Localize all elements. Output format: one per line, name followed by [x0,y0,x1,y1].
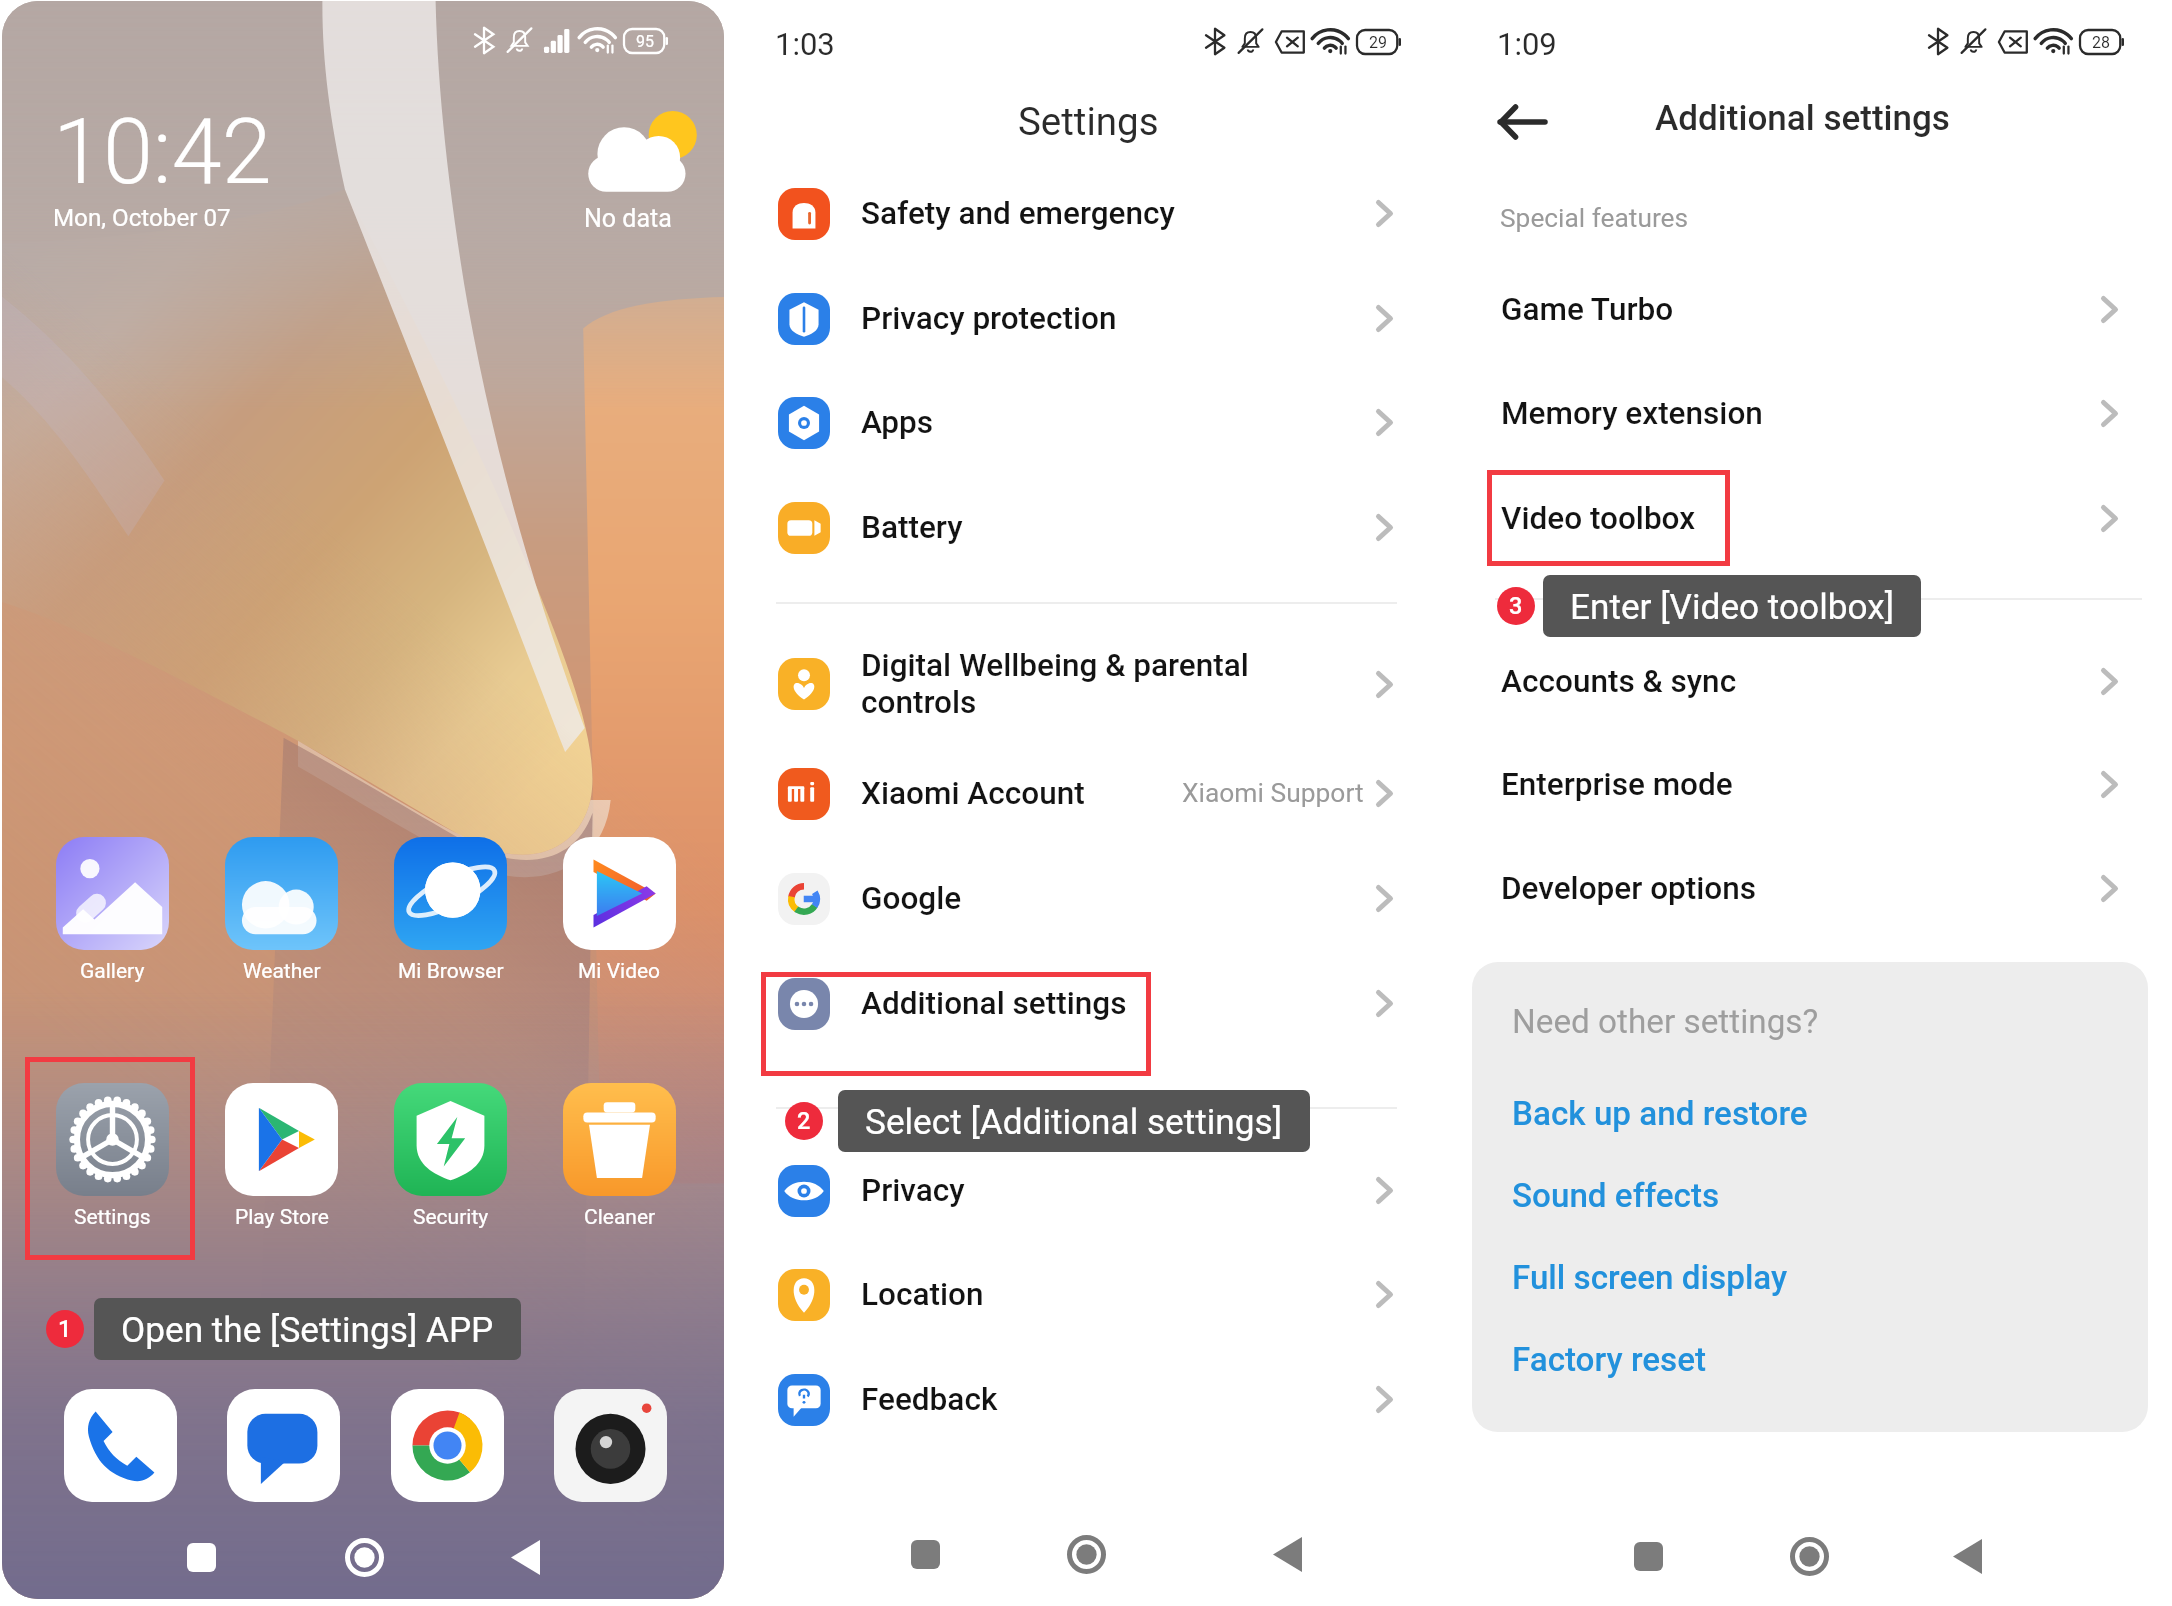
button[interactable]: Xiaomi Account [748,741,1450,846]
staticText: Enterprise mode [1501,766,1733,803]
staticText: Digital Wellbeing & parental [861,647,1249,684]
button[interactable]: Accounts & sync [1450,629,2172,733]
button[interactable]: Cleaner [549,1073,690,1249]
staticText: Game Turbo [1501,291,1674,328]
staticText: Factory reset [1512,1340,1707,1379]
button[interactable]: Feedback [748,1347,1450,1452]
staticText: Mon, October 07 [53,204,231,232]
button[interactable]: Factory reset [1490,1333,1930,1385]
button[interactable]: Privacy protection [748,266,1450,371]
staticText: Settings [74,1205,151,1230]
button[interactable]: Back [1935,1524,1999,1588]
staticText: Feedback [861,1381,998,1418]
staticText: Memory extension [1501,395,1763,432]
button[interactable]: Additional settings [748,951,1450,1056]
staticText: Accounts & sync [1501,663,1737,700]
staticText: Back up and restore [1512,1094,1808,1133]
staticText: Xiaomi Account [861,775,1085,812]
button[interactable]: Mi Browser [380,827,521,1003]
button[interactable]: Back [493,1525,557,1589]
staticText: Select [Additional settings] [865,1101,1283,1142]
button[interactable]: Location [748,1242,1450,1347]
staticText: Enter [Video toolbox] [1570,586,1894,627]
staticText: No data [584,204,672,233]
staticText: Cleaner [584,1205,656,1230]
staticText: 1:03 [775,26,835,62]
staticText: 1:09 [1497,26,1557,62]
button[interactable]: Mi Video [549,827,690,1003]
staticText: Privacy [861,1172,965,1209]
button[interactable]: Back up and restore [1490,1087,1930,1139]
staticText: Full screen display [1512,1258,1788,1297]
staticText: 3 [1509,592,1523,620]
staticText: 10:42 [53,100,272,205]
button[interactable]: Recents [1616,1524,1680,1588]
staticText: Mi Video [578,959,661,984]
staticText: Privacy protection [861,300,1117,337]
staticText: Security [413,1205,489,1230]
button[interactable]: Video toolbox [1450,466,2172,570]
other: Status icons [474,27,668,54]
staticText: Special features [1500,203,1689,234]
button[interactable]: Enterprise mode [1450,732,2172,836]
staticText: Battery [861,509,963,546]
button[interactable]: Battery [748,475,1450,580]
button[interactable]: Developer options [1450,836,2172,940]
staticText: Safety and emergency [861,195,1175,232]
button[interactable]: Back [1255,1522,1319,1586]
staticText: 1 [58,1315,72,1343]
button[interactable]: Home [1054,1522,1118,1586]
button[interactable]: Home [1777,1524,1841,1588]
staticText: Developer options [1501,870,1757,907]
staticText: Settings [1018,99,1159,144]
other: Status icons [1928,28,2124,55]
staticText: Sound effects [1512,1176,1720,1215]
staticText: Weather [243,959,321,984]
staticText: controls [861,684,977,721]
staticText: Google [861,880,962,917]
staticText: Play Store [235,1205,329,1230]
button[interactable]: Play Store [211,1073,352,1249]
staticText: Apps [861,404,933,441]
staticText: 28 [2092,33,2110,52]
staticText: Mi Browser [398,959,504,984]
staticText: Xiaomi Support [1182,778,1364,809]
staticText: Need other settings? [1512,1002,1819,1041]
button[interactable]: Safety and emergency [748,161,1450,266]
button[interactable]: Privacy [748,1138,1450,1243]
button[interactable]: Chrome [391,1389,504,1502]
button[interactable]: Apps [748,370,1450,475]
button[interactable]: Weather [211,827,352,1003]
other: Status icons [1205,28,1401,55]
staticText: 95 [636,32,654,51]
button[interactable]: Settings [42,1073,183,1249]
staticText: Additional settings [1655,98,1950,139]
staticText: Gallery [80,959,145,984]
button[interactable]: Full screen display [1490,1251,1930,1303]
button[interactable]: Gallery [42,827,183,1003]
button[interactable]: Memory extension [1450,361,2172,465]
button[interactable]: Game Turbo [1450,257,2172,361]
button[interactable]: Back [1490,90,1554,154]
staticText: Video toolbox [1501,500,1696,537]
button[interactable]: Digital Wellbeing & parental [748,625,1450,743]
button[interactable]: Messages [227,1389,340,1502]
button[interactable]: Recents [169,1525,233,1589]
button[interactable]: Google [748,846,1450,951]
button[interactable]: Phone [64,1389,177,1502]
button[interactable]: Recents [893,1522,957,1586]
button[interactable]: Home [332,1525,396,1589]
button[interactable]: Camera [554,1389,667,1502]
staticText: Location [861,1276,984,1313]
staticText: Additional settings [861,985,1127,1022]
button[interactable]: Sound effects [1490,1169,1930,1221]
button[interactable]: Security [380,1073,521,1249]
staticText: 29 [1369,33,1387,52]
staticText: Open the [Settings] APP [121,1309,494,1350]
staticText: 2 [797,1107,811,1135]
